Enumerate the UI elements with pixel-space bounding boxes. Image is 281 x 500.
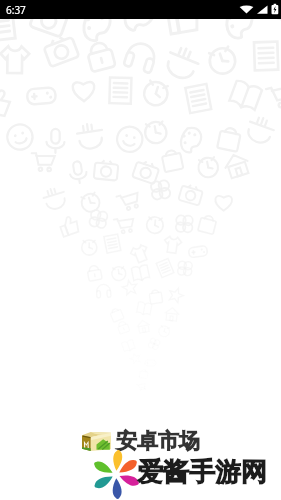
staticText: 爱酱手游网 xyxy=(137,456,267,489)
staticText: 安卓市场 xyxy=(116,428,200,454)
button[interactable]: 安卓市场 xyxy=(82,428,200,454)
staticText: 6:37 xyxy=(6,3,26,17)
